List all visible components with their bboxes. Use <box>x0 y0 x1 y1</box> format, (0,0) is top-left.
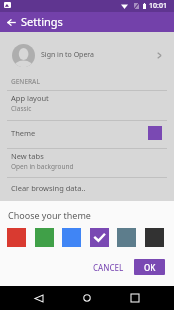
staticText: Classic <box>11 104 32 113</box>
button[interactable]: CANCEL <box>88 259 129 275</box>
staticText: 10:01 <box>149 1 167 11</box>
staticText: Sign in to Opera <box>41 50 95 60</box>
button[interactable]: Clear browsing data.. <box>0 176 174 200</box>
staticText: Choose your theme <box>8 209 91 221</box>
button[interactable]: Theme colour <box>90 228 109 247</box>
button[interactable]: Theme <box>0 119 174 147</box>
button[interactable]: Sign in to Opera <box>0 40 174 70</box>
button[interactable]: Home <box>75 286 99 310</box>
staticText: Settings <box>21 14 63 29</box>
button[interactable]: New tabs <box>0 147 174 175</box>
button[interactable]: Back <box>27 286 51 310</box>
button[interactable]: OK <box>134 259 165 275</box>
staticText: OK <box>144 262 156 273</box>
staticText: CANCEL <box>93 262 124 273</box>
button[interactable]: App layout <box>0 89 174 117</box>
staticText: Theme <box>11 128 36 138</box>
staticText: Open in background <box>11 162 74 171</box>
staticText: App layout <box>11 93 49 103</box>
staticText: Clear browsing data.. <box>11 183 86 193</box>
staticText: New tabs <box>11 151 44 161</box>
button[interactable]: Back <box>1 12 21 32</box>
button[interactable]: Recents <box>123 286 147 310</box>
staticText: GENERAL <box>11 77 40 86</box>
